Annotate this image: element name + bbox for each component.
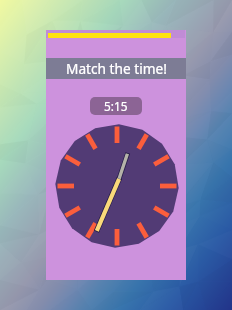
staticText: Match the time! (66, 59, 167, 78)
button[interactable]: 5:15 (90, 97, 142, 115)
button[interactable]: Clock face (54, 123, 180, 249)
staticText: 5:15 (104, 98, 128, 114)
